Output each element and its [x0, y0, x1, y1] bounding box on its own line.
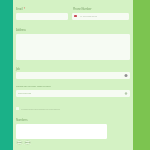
staticText: * [23, 7, 26, 11]
staticText: Numbers [16, 118, 28, 122]
staticText: Email [16, 7, 23, 11]
button[interactable]: Save [16, 140, 23, 145]
button[interactable]: Job select [16, 72, 130, 79]
staticText: Job [16, 67, 20, 71]
button[interactable]: Date input [16, 90, 130, 97]
staticText: Please tell us your date of birth [16, 84, 51, 87]
staticText: I have read and agree to the terms [21, 107, 60, 110]
staticText: +1 201-555-0123 [80, 15, 97, 18]
staticText: Address [16, 28, 26, 32]
staticText: yyyy-mm-dd [18, 92, 32, 95]
staticText: Phone Number [73, 7, 92, 11]
staticText: Save [17, 141, 22, 144]
button[interactable]: Phone number input [72, 13, 129, 20]
button[interactable]: I have read and agree to the terms [16, 106, 60, 111]
staticText: Reset [25, 141, 31, 144]
button[interactable]: Reset [24, 140, 31, 145]
